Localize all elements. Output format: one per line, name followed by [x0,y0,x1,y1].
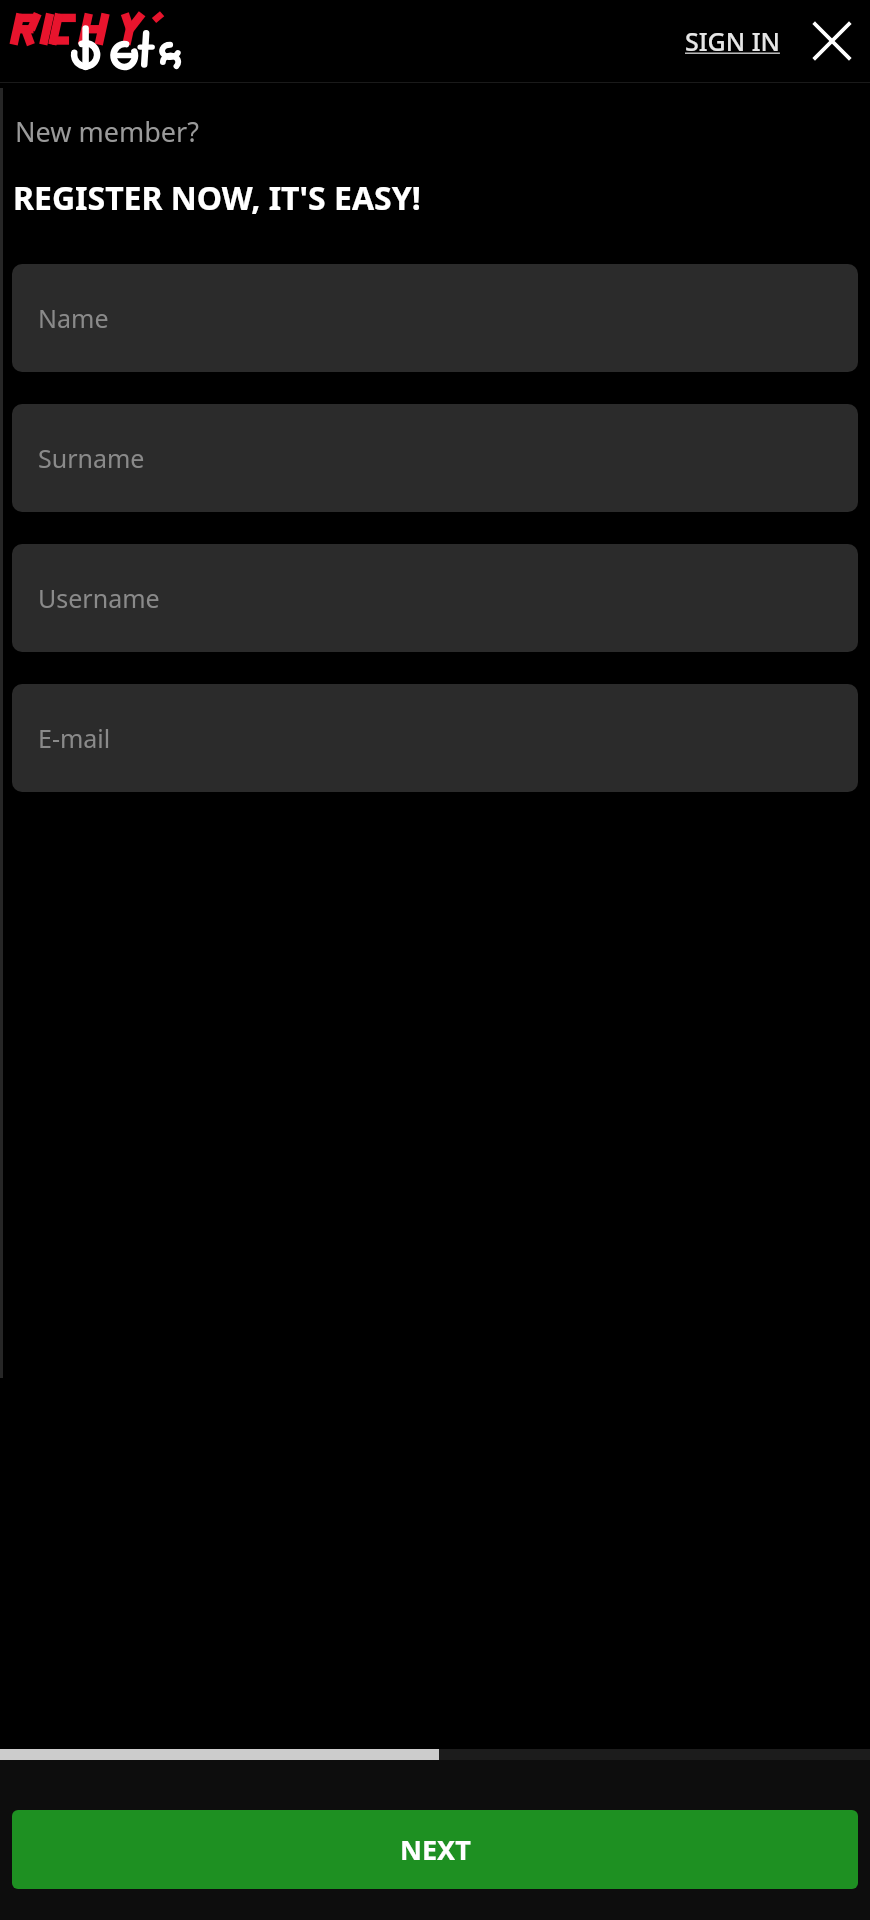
staticText: SIGN IN [685,24,780,58]
button[interactable]: Close [794,3,870,79]
staticText: Name [38,301,109,335]
staticText: E-mail [38,721,111,755]
button[interactable]: Surname [12,404,858,512]
staticText: NEXT [400,1831,471,1868]
button[interactable]: E-mail [12,684,858,792]
staticText: Surname [38,441,145,475]
staticText: REGISTER NOW, IT'S EASY! [13,176,421,220]
button[interactable]: SIGN IN [671,10,794,72]
button[interactable]: Username [12,544,858,652]
staticText: New member? [15,113,199,150]
staticText: Username [38,581,160,615]
button[interactable]: NEXT [12,1810,858,1889]
button[interactable]: Name [12,264,858,372]
